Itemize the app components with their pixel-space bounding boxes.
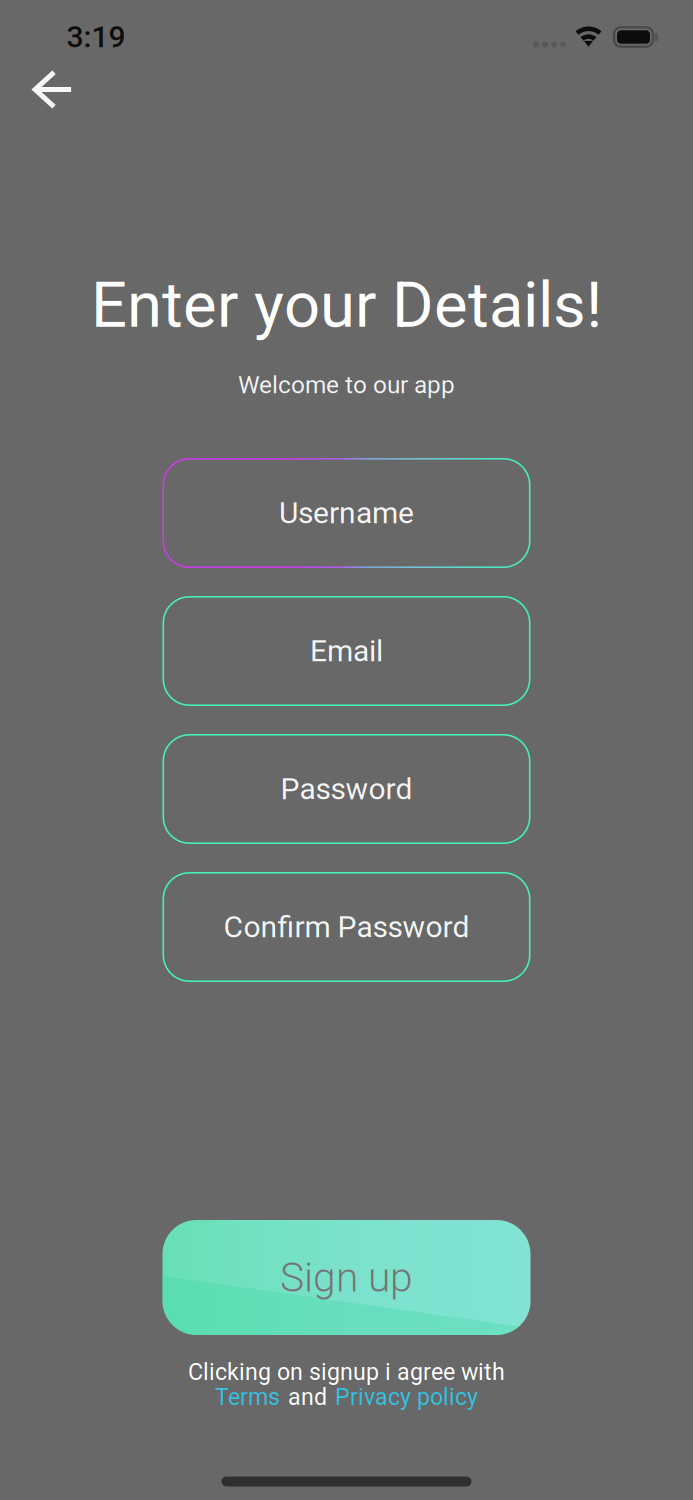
staticText: Username [279,495,414,531]
button[interactable]: Email [162,596,530,706]
staticText: Email [310,633,383,669]
staticText: Clicking on signup i agree with [188,1358,505,1386]
staticText: Welcome to our app [238,371,455,399]
staticText: and [288,1383,327,1411]
staticText: Enter your Details! [91,268,602,342]
staticText: Confirm Password [223,909,469,945]
staticText: Privacy policy [335,1383,478,1411]
button[interactable]: Privacy policy [335,1383,478,1411]
button[interactable]: Password [162,734,530,844]
button[interactable]: Username [162,458,530,568]
staticText: 3:19 [66,19,125,55]
button[interactable]: Confirm Password [162,872,530,982]
staticText: Terms [215,1383,280,1411]
button[interactable]: Sign up [162,1220,530,1335]
staticText: Password [280,771,412,807]
button[interactable]: Back [16,56,88,122]
staticText: Sign up [280,1254,413,1301]
button[interactable]: Terms [215,1383,280,1411]
